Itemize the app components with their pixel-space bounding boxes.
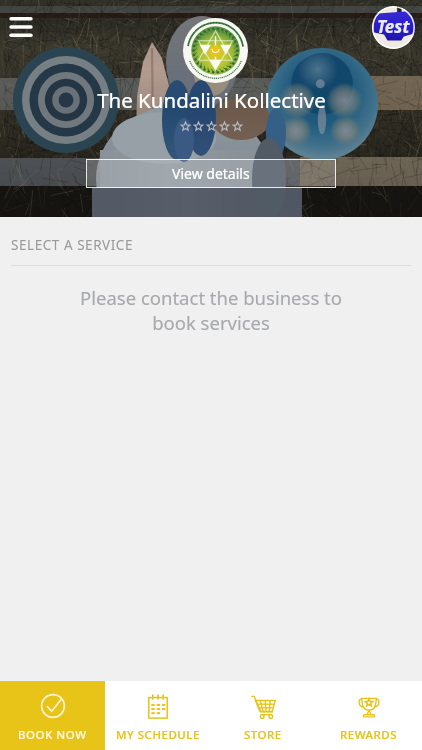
- button[interactable]: BOOK NOW: [0, 681, 105, 750]
- button[interactable]: STORE: [210, 681, 316, 750]
- staticText: SELECT A SERVICE: [11, 236, 134, 254]
- button[interactable]: Menu: [3, 9, 39, 45]
- button[interactable]: Profile: [372, 6, 415, 49]
- staticText: STORE: [244, 727, 282, 743]
- staticText: The Kundalini Kollective: [97, 86, 326, 114]
- staticText: MY SCHEDULE: [116, 727, 200, 743]
- button[interactable]: View details: [86, 159, 336, 188]
- staticText: BOOK NOW: [18, 727, 87, 743]
- button[interactable]: REWARDS: [316, 681, 422, 750]
- staticText: Please contact the business to book serv…: [0, 285, 422, 336]
- staticText: REWARDS: [340, 727, 398, 743]
- staticText: View details: [172, 164, 250, 183]
- button[interactable]: MY SCHEDULE: [105, 681, 210, 750]
- staticText: Test: [377, 15, 410, 38]
